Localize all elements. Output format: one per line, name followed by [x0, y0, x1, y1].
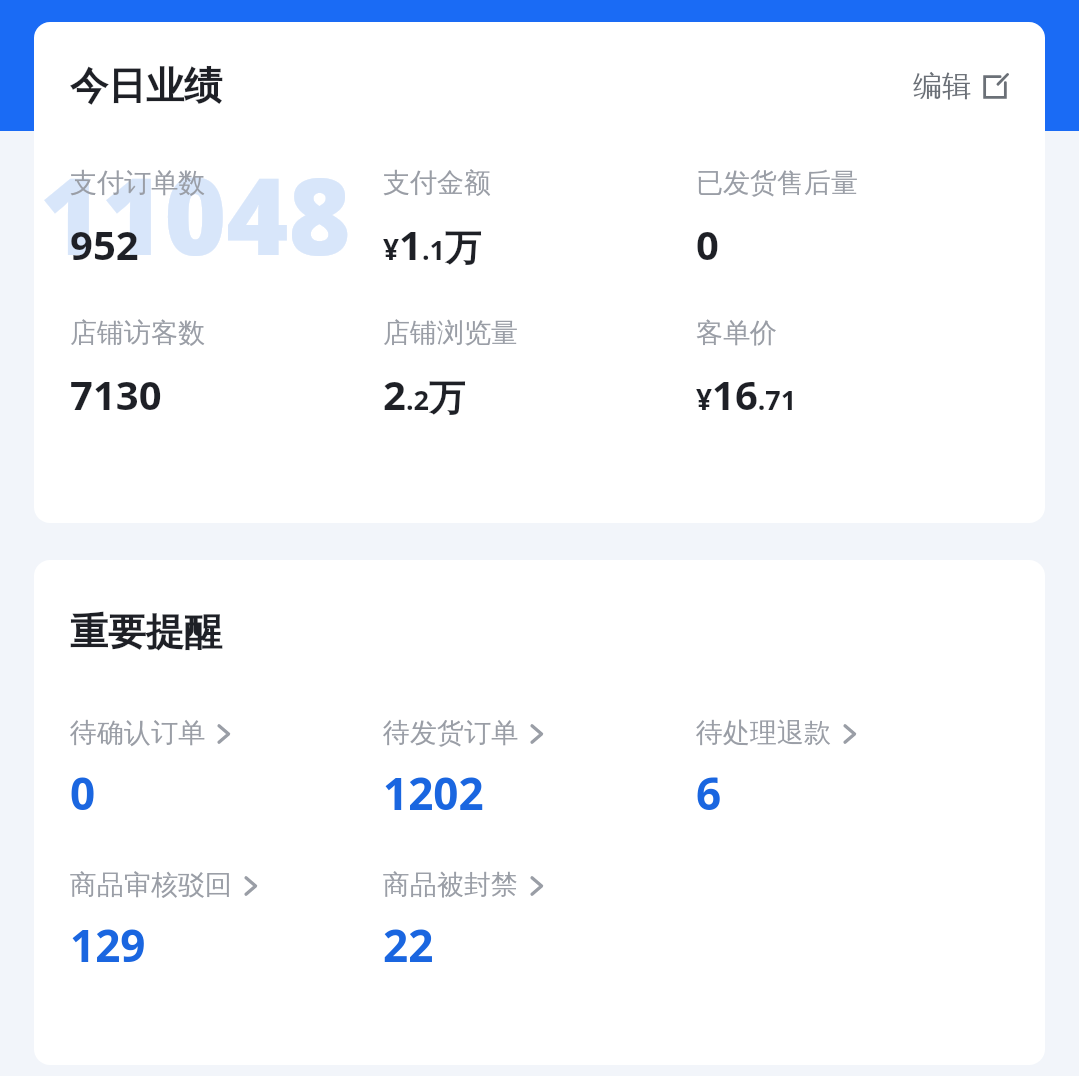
- staticText: 129: [70, 915, 146, 975]
- staticText: 客单价: [696, 316, 777, 350]
- staticText: 支付金额: [383, 166, 491, 200]
- staticText: 0: [696, 217, 719, 271]
- staticText: 2.2万: [383, 367, 465, 421]
- staticText: 7130: [70, 367, 162, 421]
- button[interactable]: 商品审核驳回: [70, 868, 383, 975]
- staticText: 11048: [40, 142, 351, 286]
- staticText: 商品被封禁: [383, 868, 518, 902]
- staticText: 22: [383, 915, 434, 975]
- staticText: 商品审核驳回: [70, 868, 232, 902]
- staticText: 店铺访客数: [70, 316, 205, 350]
- staticText: ¥16.71: [696, 367, 797, 421]
- staticText: 今日业绩: [70, 62, 222, 110]
- button[interactable]: 商品被封禁: [383, 868, 696, 975]
- staticText: 编辑: [913, 68, 971, 105]
- staticText: 店铺浏览量: [383, 316, 518, 350]
- staticText: 待确认订单: [70, 716, 205, 750]
- staticText: 0: [70, 763, 96, 823]
- staticText: 1202: [383, 763, 484, 823]
- button[interactable]: 待发货订单: [383, 716, 696, 823]
- staticText: 待发货订单: [383, 716, 518, 750]
- staticText: ¥1.1万: [383, 217, 481, 271]
- staticText: 支付订单数: [70, 166, 205, 200]
- staticText: 重要提醒: [70, 608, 222, 656]
- staticText: 6: [696, 763, 722, 823]
- button[interactable]: 待处理退款: [696, 716, 1009, 823]
- button[interactable]: 编辑: [913, 68, 1009, 105]
- staticText: 952: [70, 217, 139, 271]
- button[interactable]: 待确认订单: [70, 716, 383, 823]
- staticText: 已发货售后量: [696, 166, 858, 200]
- staticText: 待处理退款: [696, 716, 831, 750]
